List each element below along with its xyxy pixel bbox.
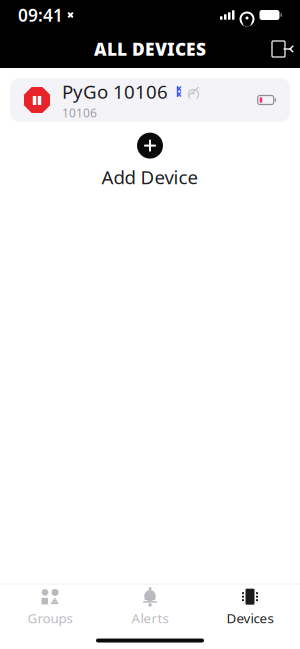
button[interactable]: Devices <box>200 584 300 630</box>
button[interactable]: Log out <box>266 34 300 64</box>
button[interactable]: Add Device <box>90 134 210 188</box>
staticText: Groups <box>27 609 72 627</box>
button[interactable]: Alerts <box>100 584 200 630</box>
button[interactable]: Groups <box>0 584 100 630</box>
staticText: Devices <box>226 609 273 627</box>
staticText: 10106 <box>62 105 97 121</box>
staticText: Alerts <box>131 609 168 627</box>
button[interactable]: PyGo 10106 <box>10 78 290 122</box>
staticText: 09:41 <box>18 3 63 26</box>
staticText: Add Device <box>101 165 198 189</box>
staticText: ALL DEVICES <box>94 37 206 60</box>
staticText: PyGo 10106 <box>62 79 168 104</box>
